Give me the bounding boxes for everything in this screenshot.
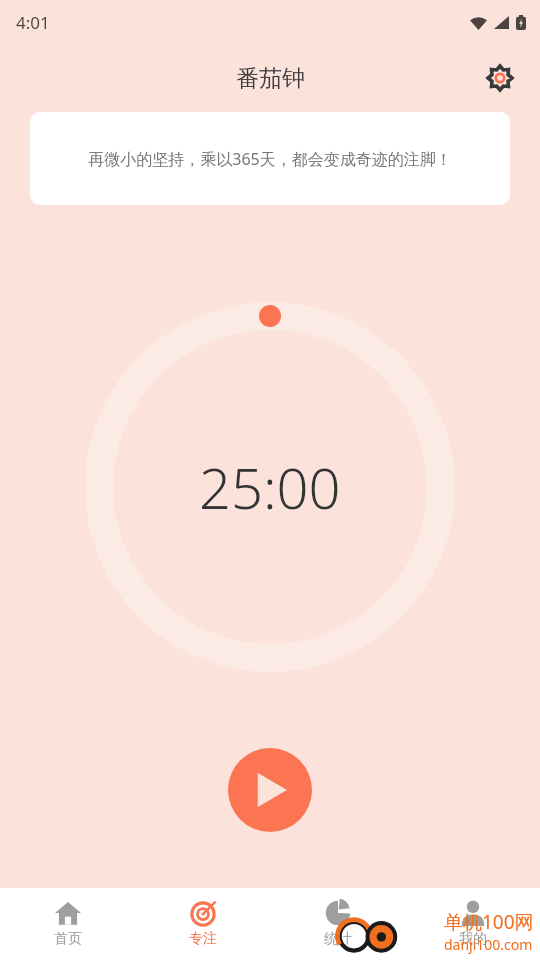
button[interactable]: 统计 [270,888,405,960]
button[interactable]: 我的 [405,888,540,960]
button[interactable]: 专注 [135,888,270,960]
button[interactable]: Settings [478,56,522,100]
button[interactable]: 再微小的坚持，乘以365天，都会变成奇迹的注脚！ [30,112,510,205]
staticText: 首页 [54,930,82,948]
staticText: 25:00 [199,449,341,525]
staticText: 专注 [189,930,217,948]
button[interactable]: Start timer [228,748,312,832]
button[interactable]: 首页 [0,888,135,960]
staticText: 统计 [324,930,352,948]
staticText: danji100.com [444,935,533,954]
staticText: 4:01 [16,11,50,34]
staticText: 再微小的坚持，乘以365天，都会变成奇迹的注脚！ [88,148,452,170]
staticText: 我的 [459,930,487,948]
staticText: 单机100网 [444,909,534,935]
staticText: 番茄钟 [236,64,305,93]
